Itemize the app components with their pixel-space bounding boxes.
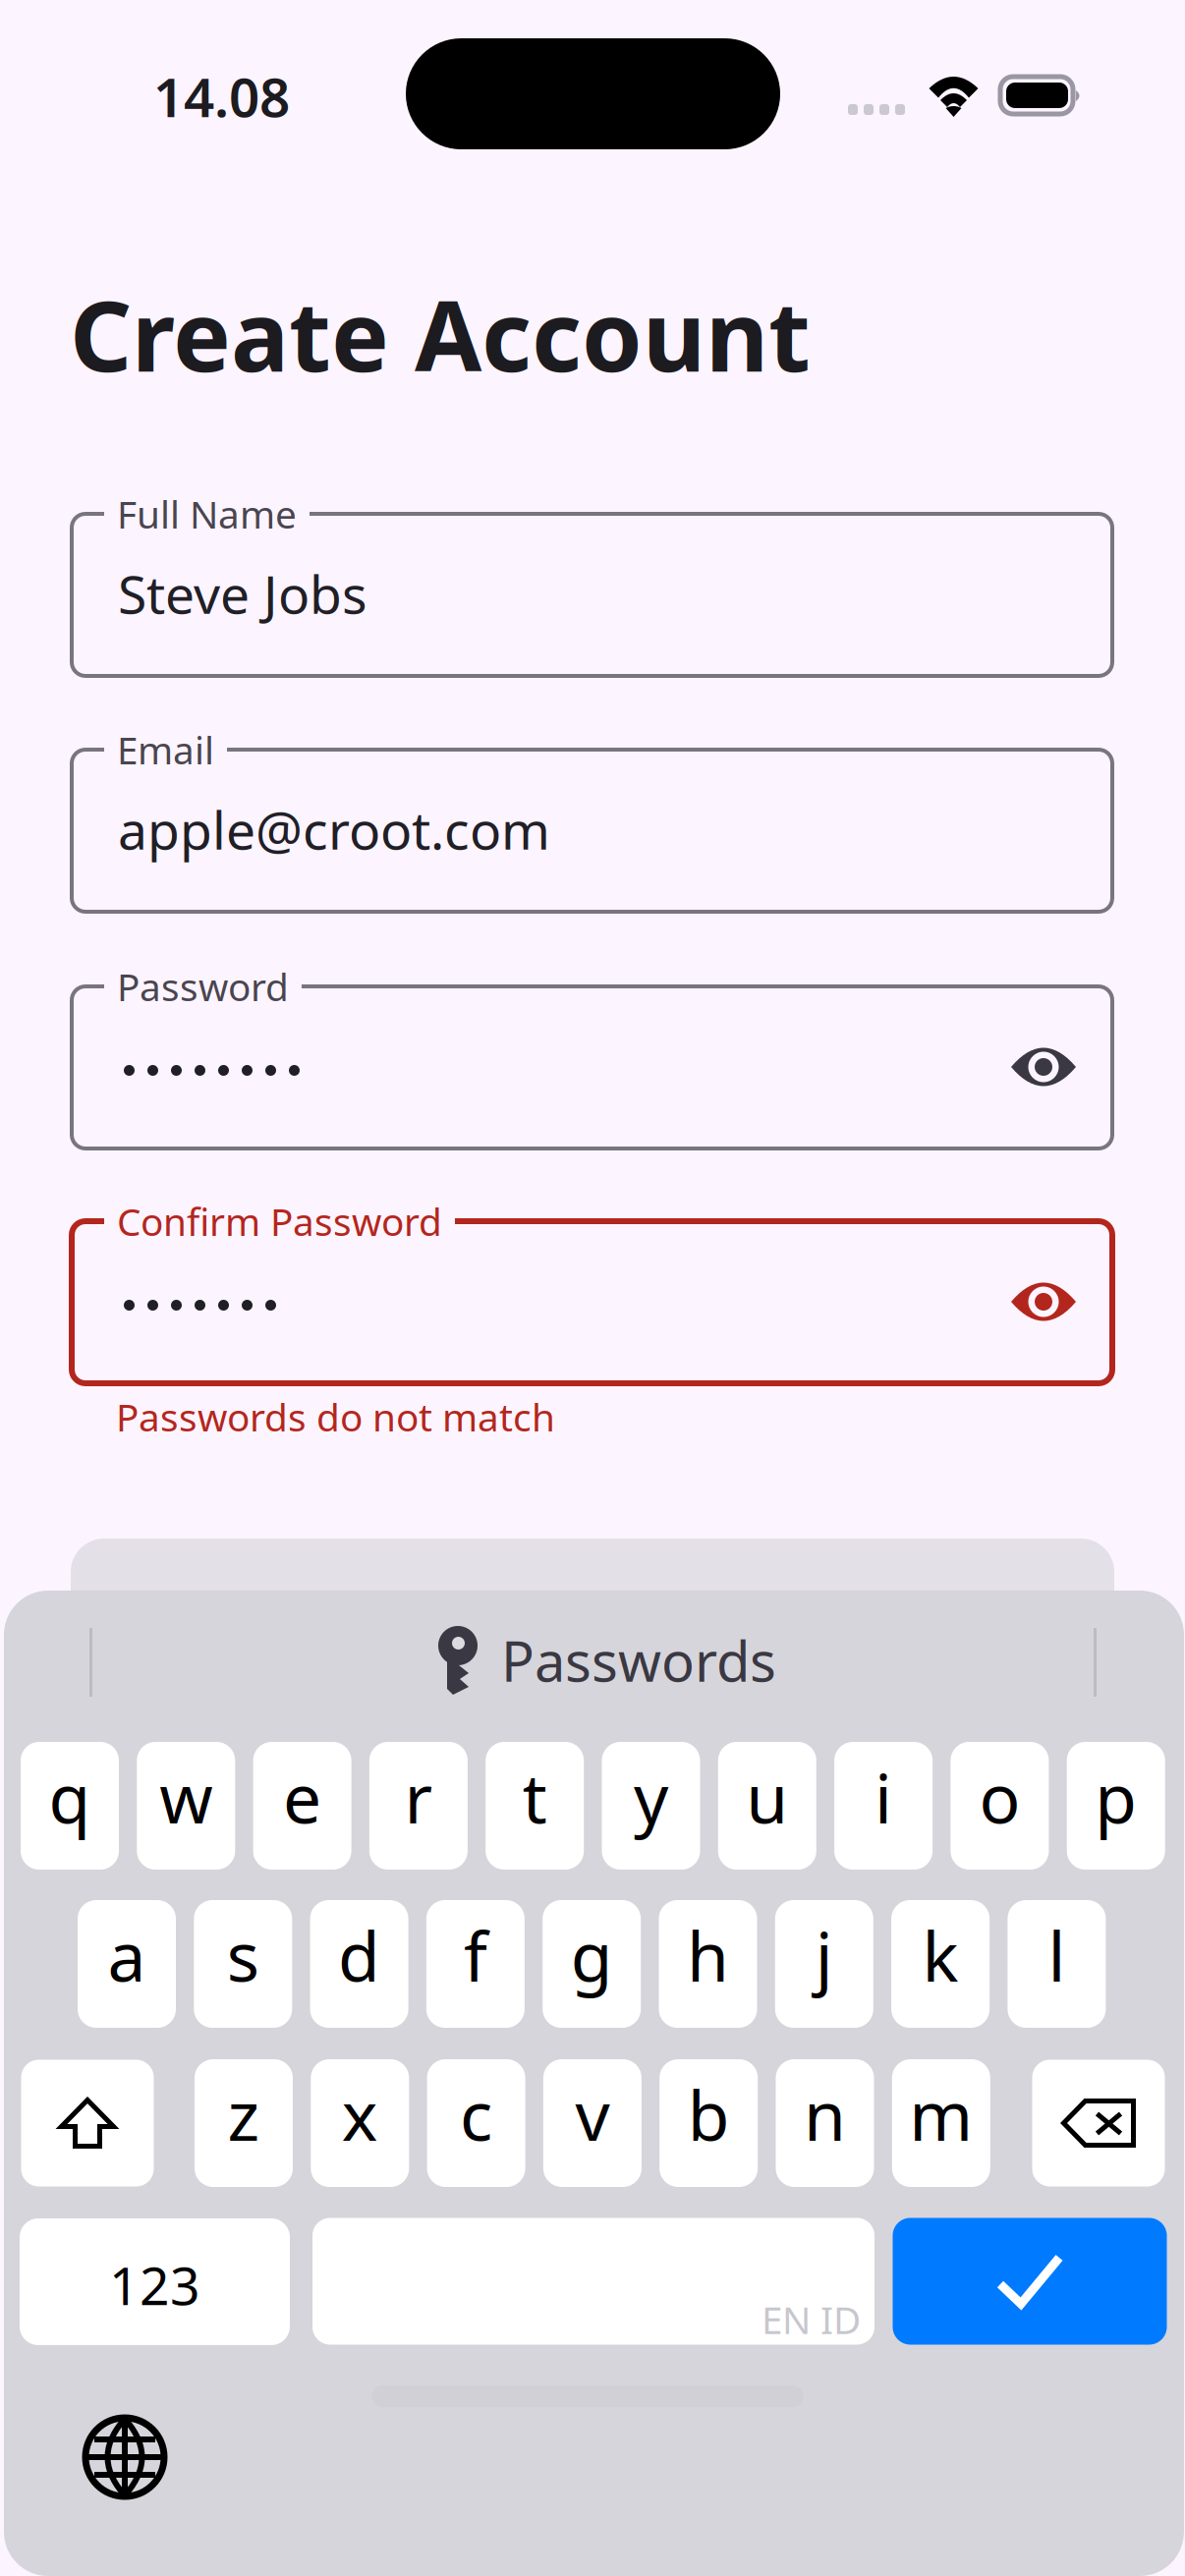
button[interactable]: r	[369, 1742, 468, 1870]
staticText: apple@croot.com	[118, 794, 550, 864]
staticText: Steve Jobs	[118, 559, 367, 628]
staticText: p	[1095, 1752, 1137, 1842]
button[interactable]: s	[194, 1900, 292, 2028]
button[interactable]: q	[21, 1742, 119, 1870]
staticText: Email	[117, 724, 214, 775]
staticText: f	[464, 1910, 487, 2000]
staticText: EN ID	[762, 2294, 861, 2345]
button[interactable]: g	[543, 1900, 641, 2028]
button[interactable]: v	[543, 2059, 642, 2187]
button[interactable]: Shift	[21, 2060, 154, 2186]
staticText: o	[979, 1752, 1020, 1842]
staticText: b	[688, 2069, 730, 2160]
button[interactable]: x	[311, 2059, 409, 2187]
staticText: v	[575, 2069, 610, 2160]
staticText: r	[404, 1752, 433, 1842]
button[interactable]: b	[660, 2059, 758, 2187]
staticText: c	[460, 2069, 492, 2160]
button[interactable]: Delete	[1032, 2060, 1165, 2186]
staticText: e	[283, 1752, 321, 1842]
staticText: Full Name	[117, 489, 297, 539]
staticText: a	[108, 1910, 146, 2000]
staticText: x	[342, 2069, 378, 2160]
button[interactable]: p	[1067, 1742, 1165, 1870]
staticText: j	[815, 1910, 833, 2000]
button[interactable]: n	[776, 2059, 874, 2187]
button[interactable]: Hide password	[1011, 1279, 1076, 1324]
button[interactable]: e	[253, 1742, 351, 1870]
button[interactable]: d	[310, 1900, 408, 2028]
button[interactable]: h	[659, 1900, 757, 2028]
staticText: z	[227, 2069, 260, 2160]
button[interactable]: Passwords	[400, 1606, 813, 1714]
button[interactable]: u	[718, 1742, 816, 1870]
button[interactable]: m	[892, 2059, 990, 2187]
staticText: n	[804, 2069, 846, 2160]
staticText: w	[159, 1752, 213, 1842]
staticText: 14.08	[153, 61, 290, 132]
button[interactable]: 123	[20, 2218, 290, 2345]
button[interactable]: j	[775, 1900, 873, 2028]
button[interactable]: i	[834, 1742, 933, 1870]
button[interactable]: space	[312, 2218, 875, 2345]
button[interactable]: o	[951, 1742, 1049, 1870]
staticText: g	[571, 1910, 613, 2000]
staticText: q	[49, 1752, 91, 1842]
staticText: d	[338, 1910, 380, 2000]
button[interactable]: f	[426, 1900, 525, 2028]
staticText: Passwords	[501, 1624, 776, 1697]
staticText: h	[687, 1910, 729, 2000]
button[interactable]: z	[195, 2059, 293, 2187]
staticText: Create Account	[70, 270, 811, 398]
staticText: s	[227, 1910, 259, 2000]
staticText: Password	[117, 961, 289, 1012]
staticText: 123	[109, 2250, 200, 2319]
button[interactable]: w	[137, 1742, 235, 1870]
staticText: l	[1048, 1910, 1066, 2000]
button[interactable]: c	[427, 2059, 525, 2187]
button[interactable]: l	[1008, 1900, 1106, 2028]
staticText: t	[522, 1752, 547, 1842]
button[interactable]: t	[486, 1742, 584, 1870]
staticText: m	[909, 2069, 973, 2160]
staticText: Passwords do not match	[116, 1391, 555, 1442]
button[interactable]: Switch keyboard	[83, 2415, 167, 2499]
button[interactable]: y	[602, 1742, 700, 1870]
staticText: i	[875, 1752, 892, 1842]
staticText: Confirm Password	[117, 1196, 442, 1246]
button[interactable]: a	[78, 1900, 176, 2028]
button[interactable]: Done	[893, 2218, 1167, 2345]
button[interactable]: k	[891, 1900, 990, 2028]
button[interactable]: Show password	[1011, 1044, 1076, 1090]
staticText: y	[634, 1752, 668, 1842]
staticText: u	[746, 1752, 788, 1842]
staticText: k	[922, 1910, 959, 2000]
